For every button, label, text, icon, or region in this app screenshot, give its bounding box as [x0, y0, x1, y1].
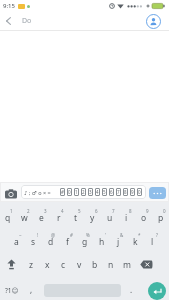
button[interactable]: w — [16, 207, 33, 227]
staticText: 0 — [68, 189, 71, 195]
staticText: i — [125, 212, 128, 224]
staticText: * — [138, 232, 141, 238]
staticText: 6 — [95, 208, 98, 214]
staticText: 5 — [103, 189, 106, 195]
staticText: 4 — [96, 189, 99, 195]
staticText: 2 — [82, 189, 85, 195]
button[interactable]: d — [42, 231, 59, 251]
button[interactable] — [149, 187, 166, 199]
staticText: 9 — [131, 189, 134, 195]
button[interactable]: , — [24, 279, 38, 300]
staticText: 9:15 — [3, 2, 15, 10]
button[interactable] — [148, 282, 166, 300]
staticText: ! — [37, 232, 39, 238]
button[interactable]: i — [118, 207, 135, 227]
staticText: c — [61, 259, 66, 271]
staticText: v — [77, 259, 82, 271]
button[interactable]: . — [125, 279, 137, 300]
staticText: 3 — [44, 208, 47, 214]
staticText: b — [92, 259, 98, 271]
staticText: 7 — [112, 208, 115, 214]
staticText: 8 — [124, 189, 127, 195]
button[interactable] — [3, 186, 18, 201]
button[interactable]: z — [22, 254, 39, 274]
button[interactable]: x — [39, 254, 55, 274]
staticText: 3 — [89, 189, 92, 195]
button[interactable] — [0, 12, 18, 30]
staticText: 8 — [129, 208, 132, 214]
staticText: o — [141, 212, 147, 224]
staticText: j — [117, 236, 120, 248]
staticText: Do — [22, 16, 32, 26]
staticText: r — [57, 212, 61, 224]
staticText: n — [108, 259, 114, 271]
button[interactable]: s — [25, 231, 42, 251]
staticText: q — [5, 212, 11, 224]
button[interactable]: y — [84, 207, 101, 227]
staticText: 1 — [10, 208, 13, 214]
button[interactable]: ?1☺ — [0, 279, 24, 300]
staticText: 7 — [117, 189, 120, 195]
staticText: 0 — [138, 189, 141, 195]
staticText: 9 — [146, 208, 149, 214]
button[interactable]: o — [135, 207, 152, 227]
staticText: 6 — [110, 189, 113, 195]
button[interactable]: f — [59, 231, 76, 251]
button[interactable]: a — [8, 231, 25, 251]
staticText: w — [21, 212, 28, 224]
button[interactable]: t — [67, 207, 84, 227]
button[interactable]: h — [93, 231, 110, 251]
button[interactable]: m — [119, 254, 135, 274]
staticText: , — [30, 284, 33, 295]
staticText: t — [74, 212, 78, 224]
button[interactable]: r — [50, 207, 67, 227]
staticText: z — [29, 259, 33, 271]
staticText: . — [130, 284, 133, 295]
staticText: f — [66, 236, 69, 248]
staticText: ? — [156, 232, 158, 238]
button[interactable]: e — [33, 207, 50, 227]
staticText: p — [158, 212, 164, 224]
button[interactable]: p — [152, 207, 169, 227]
button[interactable] — [135, 254, 157, 274]
staticText: d — [48, 236, 54, 248]
button[interactable]: q — [0, 207, 16, 227]
staticText: 5 — [78, 208, 81, 214]
staticText: m — [123, 259, 131, 271]
staticText: l — [151, 236, 154, 248]
staticText: s — [31, 236, 36, 248]
staticText: g — [82, 236, 88, 248]
staticText: ~ — [19, 232, 22, 238]
button[interactable]: j — [110, 231, 127, 251]
staticText: ♪ ; ♂ o × = — [24, 189, 51, 196]
staticText: a — [14, 236, 19, 248]
button[interactable]: n — [103, 254, 119, 274]
button[interactable]: k — [127, 231, 144, 251]
staticText: x — [45, 259, 50, 271]
staticText: # — [70, 232, 73, 238]
button[interactable] — [0, 254, 22, 274]
staticText: y — [90, 212, 95, 224]
staticText: ?1☺ — [5, 286, 19, 295]
button[interactable]: b — [87, 254, 103, 274]
staticText: # — [61, 189, 64, 195]
staticText: ' — [105, 232, 107, 238]
button[interactable]: u — [101, 207, 118, 227]
staticText: u — [107, 212, 113, 224]
button[interactable]: g — [76, 231, 93, 251]
staticText: k — [133, 236, 138, 248]
staticText: 0 — [163, 208, 166, 214]
staticText: h — [99, 236, 105, 248]
button[interactable]: l — [144, 231, 161, 251]
staticText: @ — [51, 232, 56, 238]
button[interactable]: ♪ ; ♂ o × = — [21, 185, 146, 199]
staticText: 2 — [27, 208, 30, 214]
staticText: & — [120, 232, 124, 238]
staticText: 4 — [61, 208, 64, 214]
staticText: % — [86, 232, 90, 238]
button[interactable]: c — [55, 254, 71, 274]
button[interactable]: v — [71, 254, 87, 274]
button[interactable] — [141, 12, 165, 30]
staticText: 1 — [75, 189, 78, 195]
